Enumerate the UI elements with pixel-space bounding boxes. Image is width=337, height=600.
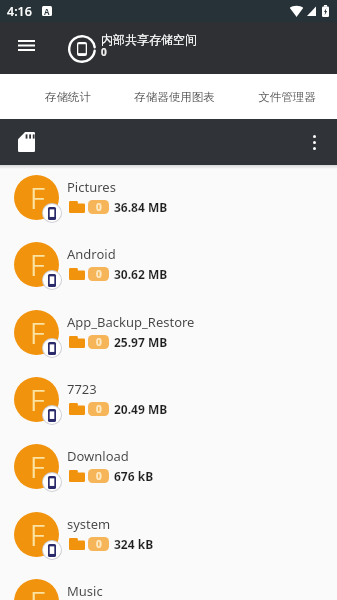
staticText: 324 kB: [114, 536, 154, 552]
staticText: F: [30, 380, 45, 419]
staticText: F: [30, 582, 45, 600]
staticText: F: [30, 447, 45, 486]
staticText: Pictures: [67, 178, 116, 196]
staticText: 文件管理器: [258, 90, 316, 104]
staticText: 20.49 MB: [114, 401, 168, 417]
staticText: 0: [96, 267, 102, 281]
staticText: system: [67, 515, 111, 533]
button[interactable]: 存储器使用图表: [119, 74, 230, 119]
button[interactable]: F: [0, 310, 337, 377]
staticText: 7723: [67, 380, 97, 398]
staticText: F: [30, 178, 45, 217]
staticText: 0: [96, 537, 102, 551]
staticText: Download: [67, 447, 129, 465]
staticText: 存储统计: [45, 90, 91, 104]
staticText: 0: [96, 335, 102, 349]
button[interactable]: F: [0, 242, 337, 309]
staticText: 30.62 MB: [114, 266, 168, 282]
staticText: 676 kB: [114, 468, 154, 484]
staticText: 0: [96, 469, 102, 483]
staticText: F: [30, 313, 45, 352]
staticText: 0: [96, 402, 102, 416]
button[interactable]: 文件管理器: [232, 74, 337, 119]
button[interactable]: F: [0, 579, 337, 600]
button[interactable]: F: [0, 444, 337, 511]
staticText: 存储器使用图表: [134, 90, 215, 104]
button[interactable]: 存储统计: [12, 74, 123, 119]
staticText: Android: [67, 245, 116, 263]
button[interactable]: Storage volume: [10, 126, 42, 158]
staticText: F: [30, 245, 45, 284]
button[interactable]: More options: [298, 126, 330, 158]
staticText: Music: [67, 582, 103, 600]
button[interactable]: F: [0, 512, 337, 579]
staticText: 0: [101, 45, 107, 59]
staticText: 25.97 MB: [114, 334, 168, 350]
staticText: App_Backup_Restore: [67, 313, 195, 331]
staticText: 0: [96, 200, 102, 214]
staticText: F: [30, 515, 45, 554]
staticText: 内部共享存储空间: [101, 32, 197, 47]
button[interactable]: F: [0, 377, 337, 444]
staticText: A: [44, 6, 50, 16]
button[interactable]: F: [0, 175, 337, 242]
button[interactable]: Navigation menu: [10, 29, 42, 61]
staticText: 4:16: [7, 3, 32, 20]
staticText: 36.84 MB: [114, 199, 168, 215]
